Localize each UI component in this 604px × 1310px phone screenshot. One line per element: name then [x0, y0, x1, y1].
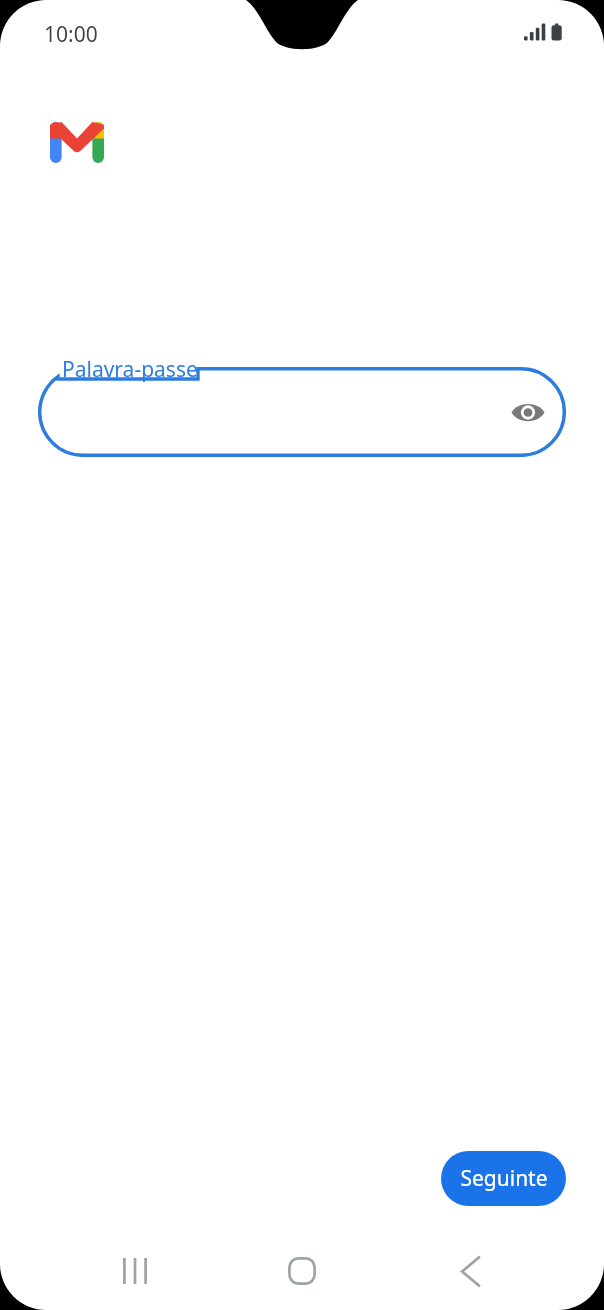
button[interactable]: Palavra-passe [38, 367, 566, 457]
staticText: 10:00 [44, 20, 98, 49]
staticText: Palavra-passe [62, 355, 198, 384]
staticText: Seguinte [460, 1164, 548, 1193]
button[interactable]: Mostrar palavra-passe [504, 388, 552, 436]
button[interactable]: Voltar [437, 1246, 503, 1296]
button[interactable]: Seguinte [441, 1151, 566, 1206]
button[interactable]: Recentes [102, 1246, 168, 1296]
button[interactable]: Início [269, 1246, 335, 1296]
